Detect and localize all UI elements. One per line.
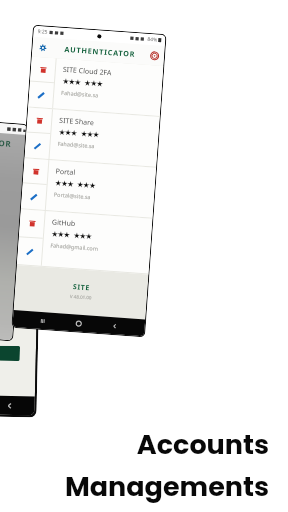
button[interactable]: Edit [24, 132, 50, 159]
other: Delete [32, 168, 40, 175]
staticText: Accounts [136, 426, 269, 464]
other: Delete [36, 117, 43, 125]
staticText: Managements [64, 468, 269, 506]
button[interactable]: Delete [23, 158, 48, 184]
staticText: 84% [147, 36, 157, 43]
staticText: V 48.01.00 [15, 289, 147, 304]
staticText: Portal [55, 167, 76, 178]
staticText: ★★★ [84, 78, 103, 89]
staticText: Fahad@site.sa [57, 140, 96, 149]
staticText: ★★★ [54, 179, 74, 189]
button[interactable]: Delete [24, 107, 160, 168]
staticText: 9:25 [37, 28, 48, 36]
button[interactable]: Home [72, 317, 85, 330]
staticText: GitHub [52, 217, 76, 229]
staticText: Fahad@site.sa [61, 89, 99, 98]
staticText: ★★★ [80, 129, 100, 140]
button[interactable]: Edit [21, 183, 47, 210]
staticText: AUTHENTICATOR [0, 132, 13, 149]
other: Back [5, 401, 15, 411]
button[interactable]: Delete [17, 209, 152, 274]
staticText: ★★★ [58, 128, 78, 138]
staticText: Fahad@gmail.com [50, 241, 98, 252]
button[interactable]: Recents [36, 315, 49, 327]
button[interactable]: Delete [28, 57, 163, 117]
button[interactable]: Back [108, 320, 121, 333]
staticText: AUTHENTICATOR [64, 44, 136, 59]
button[interactable]: Edit [17, 237, 43, 266]
other: Delete [40, 66, 47, 74]
button[interactable]: Delete [21, 158, 156, 219]
staticText: SITE [15, 278, 148, 297]
button[interactable]: Logout [147, 48, 162, 63]
staticText: ★★★ [62, 77, 81, 87]
other: Edit [25, 248, 34, 256]
other: Edit [29, 193, 38, 201]
button[interactable]: Delete [30, 57, 56, 82]
staticText: ★★★ [51, 229, 70, 240]
button[interactable]: Delete [26, 107, 52, 133]
other: Edit [33, 142, 42, 150]
button[interactable]: Edit [28, 81, 54, 108]
button[interactable]: Settings [35, 40, 50, 55]
staticText: SITE Cloud 2FA [62, 65, 112, 78]
staticText: ★★★ [76, 180, 96, 190]
staticText: SITE Share [59, 116, 94, 128]
staticText: ★★★ [73, 231, 92, 241]
button[interactable]: Delete [19, 209, 45, 238]
staticText: Portal@site.sa [54, 190, 91, 200]
button[interactable] [0, 345, 20, 361]
other: Delete [29, 220, 36, 227]
other: Edit [37, 91, 45, 100]
